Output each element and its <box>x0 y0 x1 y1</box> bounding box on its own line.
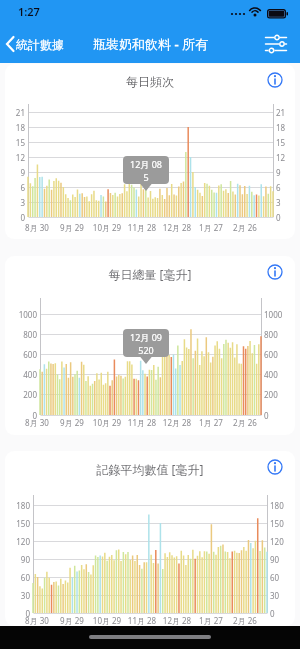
staticText: 15 <box>276 137 295 148</box>
staticText: 9 <box>276 167 295 178</box>
staticText: 2月 26 <box>225 615 265 626</box>
staticText: 18 <box>276 122 295 133</box>
staticText: 8月 30 <box>17 222 57 233</box>
staticText: 12月 09 <box>123 331 169 343</box>
staticText: 11月 28 <box>122 417 162 428</box>
staticText: 10月 29 <box>87 417 127 428</box>
staticText: 600 <box>13 349 37 360</box>
staticText: 0 <box>264 410 288 421</box>
staticText: 90 <box>6 554 30 565</box>
staticText: 520 <box>123 344 169 356</box>
staticText: 1000 <box>264 309 288 320</box>
staticText: 60 <box>6 572 30 583</box>
staticText: 12月 08 <box>123 158 169 170</box>
staticText: 12 <box>276 152 295 163</box>
staticText: 1月 27 <box>191 222 231 233</box>
staticText: 800 <box>13 329 37 340</box>
staticText: 12月 28 <box>157 222 197 233</box>
staticText: 150 <box>270 518 294 529</box>
staticText: 9月 29 <box>52 615 92 626</box>
staticText: 9 <box>5 167 25 178</box>
staticText: 9月 29 <box>52 222 92 233</box>
button[interactable] <box>266 458 284 476</box>
staticText: 6 <box>276 182 295 193</box>
staticText: 11月 28 <box>122 222 162 233</box>
staticText: 11月 28 <box>122 615 162 626</box>
button[interactable]: 統計數據 <box>5 35 64 53</box>
button[interactable] <box>266 263 284 281</box>
staticText: 400 <box>13 369 37 380</box>
staticText: 30 <box>270 590 294 601</box>
staticText: 12月 28 <box>157 615 197 626</box>
button[interactable] <box>266 71 284 89</box>
staticText: 90 <box>270 554 294 565</box>
staticText: 1:27 <box>18 4 40 19</box>
staticText: 600 <box>264 349 288 360</box>
staticText: 8月 30 <box>17 615 57 626</box>
staticText: 記錄平均數值 [毫升] <box>5 461 295 477</box>
staticText: 2月 26 <box>225 417 265 428</box>
staticText: 每日總量 [毫升] <box>5 266 295 282</box>
staticText: 120 <box>6 536 30 547</box>
staticText: 10月 29 <box>87 222 127 233</box>
staticText: 12月 28 <box>157 417 197 428</box>
staticText: 150 <box>6 518 30 529</box>
staticText: 12 <box>5 152 25 163</box>
staticText: 5 <box>123 171 169 183</box>
staticText: 180 <box>6 500 30 511</box>
staticText: 200 <box>13 389 37 400</box>
staticText: 0 <box>6 608 30 619</box>
staticText: 0 <box>13 410 37 421</box>
staticText: 瓶裝奶和飲料 - 所有 <box>93 35 208 53</box>
staticText: 2月 26 <box>225 222 265 233</box>
staticText: 800 <box>264 329 288 340</box>
staticText: 200 <box>264 389 288 400</box>
staticText: 0 <box>5 212 25 223</box>
staticText: 9月 29 <box>52 417 92 428</box>
staticText: 0 <box>270 608 294 619</box>
staticText: 1月 27 <box>191 615 231 626</box>
staticText: 21 <box>5 107 25 118</box>
staticText: 400 <box>264 369 288 380</box>
staticText: 30 <box>6 590 30 601</box>
button[interactable] <box>264 32 288 56</box>
staticText: 180 <box>270 500 294 511</box>
staticText: 6 <box>5 182 25 193</box>
staticText: 120 <box>270 536 294 547</box>
staticText: 每日頻次 <box>5 74 295 89</box>
staticText: 18 <box>5 122 25 133</box>
staticText: 21 <box>276 107 295 118</box>
staticText: 統計數據 <box>16 37 64 52</box>
staticText: 15 <box>5 137 25 148</box>
staticText: 1月 27 <box>191 417 231 428</box>
staticText: 3 <box>5 197 25 208</box>
staticText: 10月 29 <box>87 615 127 626</box>
staticText: 60 <box>270 572 294 583</box>
staticText: 8月 30 <box>17 417 57 428</box>
staticText: 0 <box>276 212 295 223</box>
staticText: 1000 <box>13 309 37 320</box>
staticText: 3 <box>276 197 295 208</box>
